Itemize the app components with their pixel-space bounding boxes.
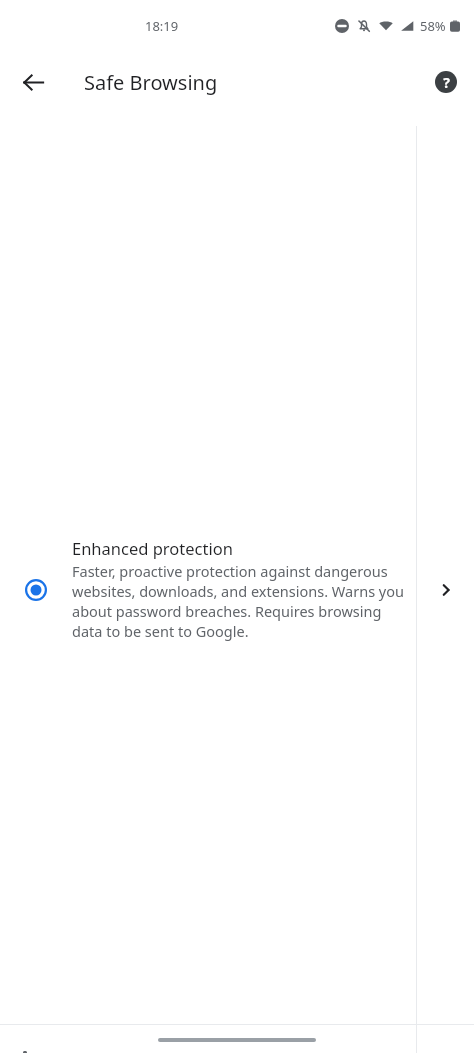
staticText: Faster, proactive protection against dan… [72,561,405,641]
staticText: Enhanced protection [72,537,233,559]
staticText: Safe Browsing [84,69,218,96]
button[interactable]: Back [11,60,55,104]
button[interactable]: Enhanced protection [0,126,474,1053]
staticText: 18:19 [145,17,179,35]
staticText: 58% [420,17,446,35]
staticText: ? [443,73,450,92]
button[interactable]: Open details [425,569,467,611]
button[interactable]: Help [425,61,467,103]
